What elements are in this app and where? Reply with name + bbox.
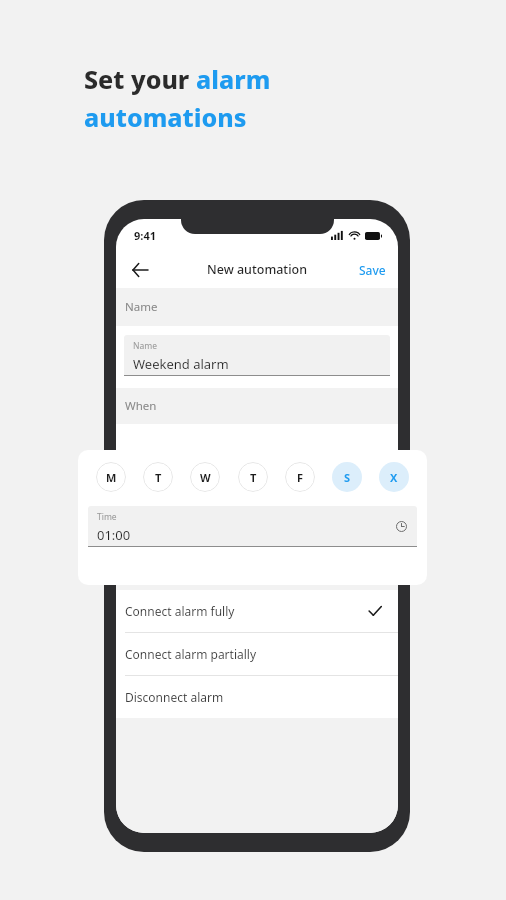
staticText: Disconnect alarm [125,689,224,705]
button[interactable]: F [285,462,315,492]
staticText: Connect alarm fully [125,603,235,619]
staticText: T [155,470,162,485]
staticText: Connect alarm partially [125,646,257,662]
staticText: Name [125,299,158,315]
button[interactable]: M [96,462,126,492]
button[interactable]: Connect alarm partially [116,633,398,675]
button[interactable]: S [332,462,362,492]
button[interactable]: Name [124,335,390,379]
staticText: New automation [207,261,308,278]
staticText: 9:41 [134,228,156,243]
staticText: Weekend alarm [133,355,229,373]
button[interactable]: X [379,462,409,492]
staticText: F [297,470,304,485]
staticText: M [106,470,117,485]
staticText: automations [84,100,247,134]
staticText: Set your [84,62,196,96]
staticText: Save [359,262,386,278]
staticText: alarm [196,62,271,96]
button[interactable]: T [143,462,173,492]
button[interactable]: W [190,462,220,492]
staticText: Time [97,511,117,523]
button[interactable]: Disconnect alarm [116,676,398,718]
staticText: Name [133,340,157,352]
staticText: W [200,470,211,485]
button[interactable]: Time [88,506,417,550]
staticText: T [250,470,257,485]
staticText: When [125,398,157,414]
button[interactable]: Back [124,254,156,286]
staticText: X [390,470,398,485]
button[interactable]: Save [347,256,398,284]
staticText: S [344,470,351,485]
button[interactable]: Connect alarm fully [116,590,398,632]
staticText: 01:00 [97,526,131,544]
button[interactable]: T [238,462,268,492]
